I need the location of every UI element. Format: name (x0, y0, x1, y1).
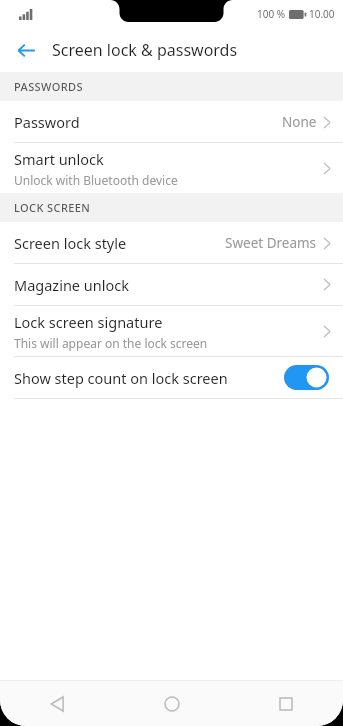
other: Show step count on lock screen toggle (284, 365, 329, 390)
staticText: Unlock with Bluetooth device (14, 172, 178, 188)
staticText: Password (14, 112, 80, 132)
button[interactable]: Smart unlock (0, 143, 343, 193)
button[interactable]: Back (9, 33, 43, 67)
button[interactable]: Home (115, 681, 229, 726)
staticText: LOCK SCREEN (14, 200, 91, 215)
staticText: Screen lock style (14, 233, 127, 253)
button[interactable]: Magazine unlock (0, 264, 343, 306)
staticText: PASSWORDS (14, 79, 83, 94)
staticText: 100 % (257, 7, 286, 21)
staticText: Screen lock & passwords (52, 39, 238, 61)
staticText: Magazine unlock (14, 275, 129, 295)
staticText: This will appear on the lock screen (14, 335, 208, 351)
button[interactable]: Back (0, 681, 115, 726)
button[interactable]: Show step count on lock screen (0, 357, 343, 399)
staticText: 10.00 (309, 7, 335, 21)
button[interactable]: Screen lock style (0, 222, 343, 264)
staticText: None (282, 113, 317, 131)
button[interactable]: Recent apps (229, 681, 343, 726)
button[interactable]: Lock screen signature (0, 306, 343, 357)
button[interactable]: Password (0, 101, 343, 143)
staticText: Show step count on lock screen (14, 368, 228, 388)
staticText: Sweet Dreams (225, 234, 317, 252)
staticText: Lock screen signature (14, 312, 163, 332)
staticText: Smart unlock (14, 149, 104, 169)
